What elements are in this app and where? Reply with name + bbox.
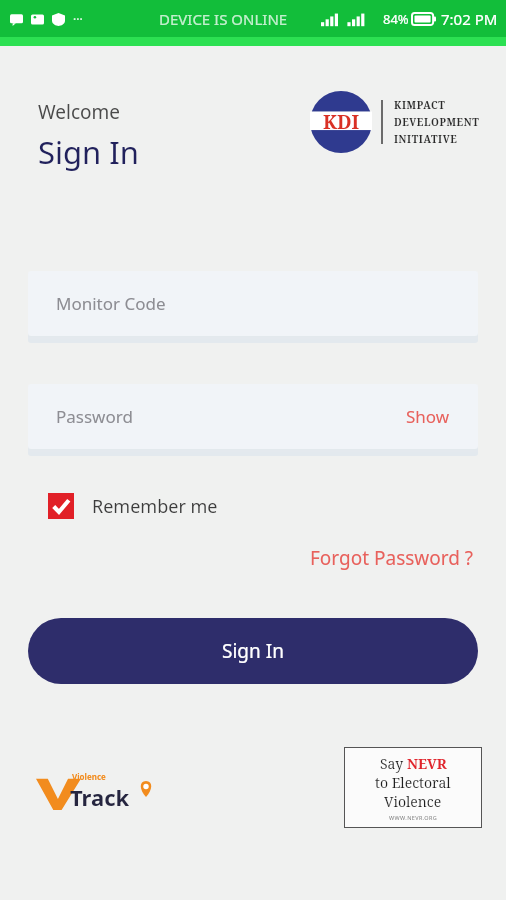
staticText: Track bbox=[70, 782, 130, 812]
staticText: KDI bbox=[323, 109, 360, 135]
button[interactable]: Remember me bbox=[48, 493, 218, 519]
staticText: KIMPACT bbox=[394, 98, 446, 112]
staticText: Monitor Code bbox=[56, 292, 450, 315]
staticText: Violence bbox=[384, 792, 442, 811]
button[interactable]: Password bbox=[28, 384, 478, 449]
staticText: 84% bbox=[383, 10, 409, 28]
staticText: Sign In bbox=[38, 131, 139, 173]
staticText: Violence bbox=[72, 771, 106, 782]
staticText: to Electoral bbox=[375, 773, 451, 792]
staticText: Welcome bbox=[38, 99, 121, 125]
button[interactable]: Forgot Password ? bbox=[306, 541, 478, 575]
button[interactable]: Sign In bbox=[28, 618, 478, 684]
button[interactable]: Monitor Code bbox=[28, 271, 478, 336]
staticText: WWW.NEVR.ORG bbox=[389, 814, 438, 821]
staticText: Say bbox=[380, 754, 407, 773]
staticText: Password bbox=[56, 405, 406, 428]
staticText: NEVR bbox=[407, 754, 447, 773]
staticText: Remember me bbox=[92, 494, 218, 519]
staticText: DEVICE IS ONLINE bbox=[159, 9, 288, 29]
staticText: INITIATIVE bbox=[394, 132, 458, 146]
staticText: Sign In bbox=[222, 638, 284, 664]
staticText: Show bbox=[406, 405, 450, 428]
staticText: 7:02 PM bbox=[441, 9, 498, 29]
button[interactable]: Show bbox=[406, 405, 450, 428]
staticText: DEVELOPMENT bbox=[394, 115, 480, 129]
staticText: Forgot Password ? bbox=[310, 545, 474, 571]
staticText: ··· bbox=[73, 11, 83, 27]
